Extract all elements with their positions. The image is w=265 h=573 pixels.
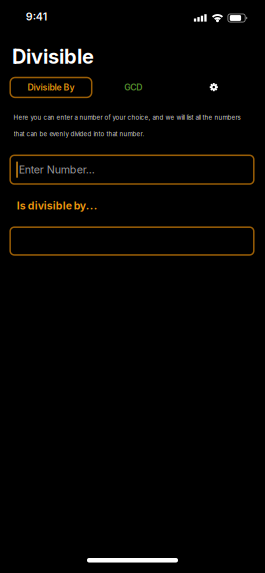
button[interactable]: Divisible By bbox=[10, 77, 92, 97]
staticText: Is divisible by... bbox=[17, 199, 98, 212]
button[interactable]: Settings bbox=[175, 78, 252, 97]
staticText: Divisible By bbox=[27, 82, 74, 93]
staticText: Enter Number... bbox=[19, 163, 95, 176]
staticText: GCD bbox=[124, 82, 142, 93]
staticText: 9:41 bbox=[26, 10, 48, 23]
staticText: Divisible bbox=[12, 44, 94, 68]
button[interactable]: GCD bbox=[92, 78, 175, 97]
staticText: Here you can enter a number of your choi… bbox=[13, 114, 240, 121]
staticText: that can be evenly divided into that num… bbox=[13, 130, 144, 138]
